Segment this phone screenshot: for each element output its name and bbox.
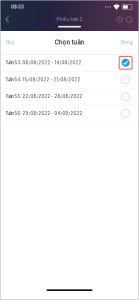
button[interactable]: Tuần 53: 08/08/2022 - 14/08/2022 (0, 54, 139, 71)
button[interactable]: Notes (115, 15, 124, 24)
staticText: Tuần 53: 08/08/2022 - 14/08/2022 (5, 60, 81, 65)
button[interactable]: Back (0, 14, 14, 25)
staticText: Tuần 54: 15/08/2022 - 21/08/2022 (5, 77, 80, 82)
button[interactable]: Tuần 55: 22/08/2022 - 28/08/2022 (0, 88, 139, 105)
button[interactable]: Xong (115, 35, 139, 49)
button[interactable]: Tuần 56: 29/08/2022 - 04/09/2022 (0, 105, 139, 122)
staticText: Tuần 55: 22/08/2022 - 28/08/2022 (5, 94, 82, 99)
staticText: Tuần 56: 29/08/2022 - 04/09/2022 (5, 111, 82, 116)
button[interactable]: More (124, 15, 134, 24)
staticText: 08:33 (11, 4, 24, 10)
staticText: Phiếu bán 2 (56, 17, 82, 22)
button[interactable]: Hủy (0, 35, 20, 49)
staticText: Chọn tuần (54, 39, 84, 46)
staticText: Xong (121, 40, 133, 45)
button[interactable]: Tuần 54: 15/08/2022 - 21/08/2022 (0, 71, 139, 88)
staticText: Hủy (6, 40, 14, 45)
